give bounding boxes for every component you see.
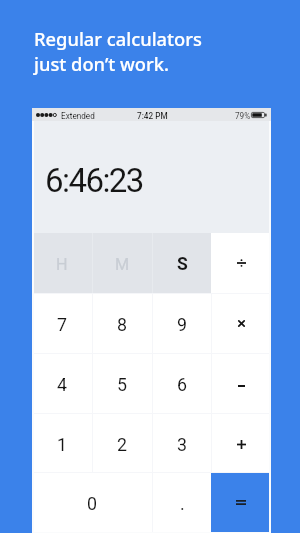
staticText: 3 [177,434,188,455]
button[interactable]: Divide [211,233,271,293]
staticText: 6 [177,374,188,395]
staticText: M [115,255,130,274]
button[interactable]: 1 [32,413,92,473]
button[interactable]: H [32,233,92,293]
button[interactable]: 6 [152,353,212,413]
staticText: Regular calculators [34,26,202,51]
button[interactable]: 4 [32,353,92,413]
staticText: 0 [87,493,98,514]
button[interactable]: 8 [92,293,152,353]
staticText: 4 [57,374,68,395]
staticText: 8 [117,314,128,335]
button[interactable]: M [92,233,152,293]
staticText: 7 [57,314,68,335]
staticText: just don’t work. [34,51,169,76]
staticText: 9 [177,314,188,335]
staticText: 7:42 PM [137,111,168,121]
staticText: . [180,493,185,514]
staticText: H [56,255,68,274]
staticText: Extended [61,111,95,121]
staticText: S [177,254,188,275]
button[interactable]: Equals [211,472,271,532]
button[interactable]: Multiply [211,293,271,353]
button[interactable]: Subtract [211,353,271,413]
button[interactable]: 0 [32,472,152,532]
staticText: 6:46:23 [45,161,143,200]
button[interactable]: 3 [152,413,212,473]
button[interactable]: S [152,233,212,293]
button[interactable]: . [152,472,212,532]
button[interactable]: Add [211,413,271,473]
button[interactable]: 2 [92,413,152,473]
staticText: 5 [117,374,128,395]
staticText: 79% [235,111,251,121]
button[interactable]: 7 [32,293,92,353]
button[interactable]: 5 [92,353,152,413]
staticText: 2 [117,434,128,455]
staticText: 1 [57,434,68,455]
button[interactable]: 9 [152,293,212,353]
